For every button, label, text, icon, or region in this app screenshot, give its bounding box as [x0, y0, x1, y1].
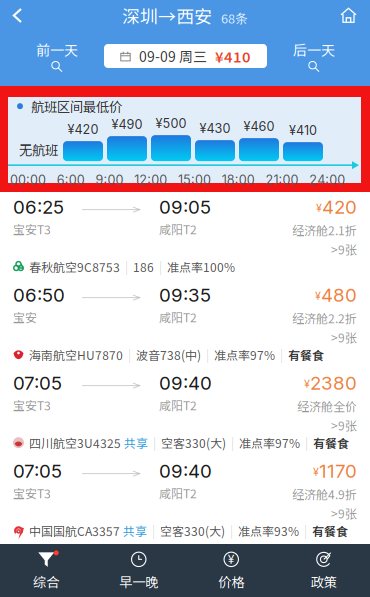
button[interactable]: 07:05	[0, 368, 370, 456]
staticText: 2380	[310, 372, 357, 394]
staticText: 15:00	[178, 172, 211, 187]
staticText: 四川航空3U4325	[29, 434, 121, 451]
staticText: |	[304, 522, 307, 539]
button[interactable]: 政策	[277, 543, 370, 597]
staticText: ¥	[315, 289, 321, 302]
staticText: 有餐食	[288, 346, 324, 363]
staticText: >9张	[331, 505, 357, 522]
staticText: 1170	[319, 460, 357, 482]
staticText: 宝安T3	[13, 396, 51, 414]
button[interactable]: Home	[327, 1, 370, 30]
staticText: 186	[133, 258, 154, 275]
staticText: 经济舱2.1折	[292, 221, 357, 239]
staticText: 咸阳T2	[159, 484, 197, 502]
staticText: 宝安T3	[13, 220, 51, 238]
staticText: 中国国航CA3357	[29, 522, 120, 539]
staticText: |	[152, 522, 155, 539]
staticText: 6:00	[57, 172, 85, 187]
button[interactable]: 综合	[0, 543, 92, 597]
staticText: |	[230, 522, 233, 539]
staticText: 24:00	[309, 172, 345, 187]
staticText: 前一天	[36, 39, 78, 60]
button[interactable]: Back	[0, 0, 39, 30]
staticText: 共享	[121, 434, 148, 451]
staticText: >9张	[331, 417, 357, 434]
staticText: 经济舱全价	[297, 397, 357, 415]
staticText: 准点率100%	[167, 258, 235, 275]
staticText: |	[153, 434, 156, 451]
staticText: >9张	[331, 329, 357, 346]
staticText: ¥460	[243, 119, 274, 134]
staticText: 宝安	[13, 308, 37, 326]
staticText: 07:05	[13, 460, 62, 482]
staticText: ¥	[316, 201, 322, 214]
staticText: ¥	[304, 377, 310, 390]
button[interactable]: 07:05	[0, 456, 370, 544]
staticText: 经济舱2.2折	[292, 309, 357, 327]
staticText: 12:00	[134, 172, 167, 187]
staticText: 空客330(大)	[161, 434, 226, 451]
staticText: 空客330(大)	[160, 522, 225, 539]
staticText: 00:00	[10, 172, 46, 187]
button[interactable]: 06:25	[0, 192, 370, 280]
staticText: 海南航空HU7870	[29, 346, 123, 363]
button[interactable]: 后一天	[281, 39, 347, 73]
staticText: 有餐食	[313, 434, 349, 451]
button[interactable]: ¥	[185, 543, 277, 597]
staticText: 06:50	[13, 284, 65, 306]
staticText: 07:05	[13, 372, 62, 394]
staticText: 09:35	[159, 284, 211, 306]
staticText: 航班区间最低价	[31, 96, 122, 116]
staticText: 480	[321, 284, 357, 306]
staticText: 政策	[311, 572, 337, 591]
staticText: ¥410	[289, 123, 317, 138]
staticText: |	[280, 346, 283, 363]
staticText: 9:00	[95, 172, 123, 187]
button[interactable]: 09-09 周三	[104, 44, 267, 68]
staticText: ¥430	[199, 121, 230, 136]
button[interactable]: 前一天	[24, 39, 90, 73]
staticText: 无航班	[19, 140, 58, 159]
staticText: 深圳→西安	[122, 2, 212, 29]
staticText: ¥	[313, 465, 319, 478]
staticText: |	[159, 258, 162, 275]
staticText: 06:25	[13, 196, 64, 218]
staticText: 咸阳T2	[159, 396, 197, 414]
staticText: ¥500	[155, 116, 186, 131]
staticText: |	[231, 434, 234, 451]
staticText: 咸阳T2	[159, 220, 197, 238]
staticText: 咸阳T2	[159, 308, 197, 326]
staticText: 68条	[221, 9, 248, 27]
staticText: ¥490	[111, 117, 142, 132]
staticText: 09:05	[159, 196, 211, 218]
staticText: 后一天	[293, 39, 335, 60]
staticText: 波音738(中)	[136, 346, 201, 363]
staticText: 宝安T3	[13, 484, 51, 502]
staticText: 共享	[120, 522, 147, 539]
staticText: |	[206, 346, 209, 363]
staticText: >9张	[331, 241, 357, 258]
staticText: 09:40	[159, 460, 212, 482]
staticText: 09-09 周三	[139, 46, 207, 66]
staticText: 综合	[33, 572, 59, 591]
staticText: 有餐食	[312, 522, 348, 539]
staticText: 早一晚	[119, 572, 158, 591]
staticText: 09:40	[159, 372, 212, 394]
staticText: 准点率97%	[239, 434, 300, 451]
staticText: 21:00	[265, 172, 298, 187]
staticText: |	[305, 434, 308, 451]
staticText: 18:00	[222, 172, 255, 187]
staticText: 价格	[218, 572, 244, 591]
staticText: |	[125, 258, 128, 275]
staticText: ¥	[228, 552, 235, 567]
staticText: ¥410	[215, 45, 251, 67]
staticText: 春秋航空9C8753	[29, 258, 120, 275]
staticText: 准点率93%	[238, 522, 299, 539]
staticText: 420	[322, 196, 357, 218]
button[interactable]: 早一晚	[92, 543, 185, 597]
staticText: |	[128, 346, 131, 363]
staticText: ¥420	[67, 122, 98, 137]
staticText: 经济舱4.9折	[292, 485, 357, 503]
staticText: 准点率97%	[214, 346, 275, 363]
button[interactable]: 06:50	[0, 280, 370, 368]
